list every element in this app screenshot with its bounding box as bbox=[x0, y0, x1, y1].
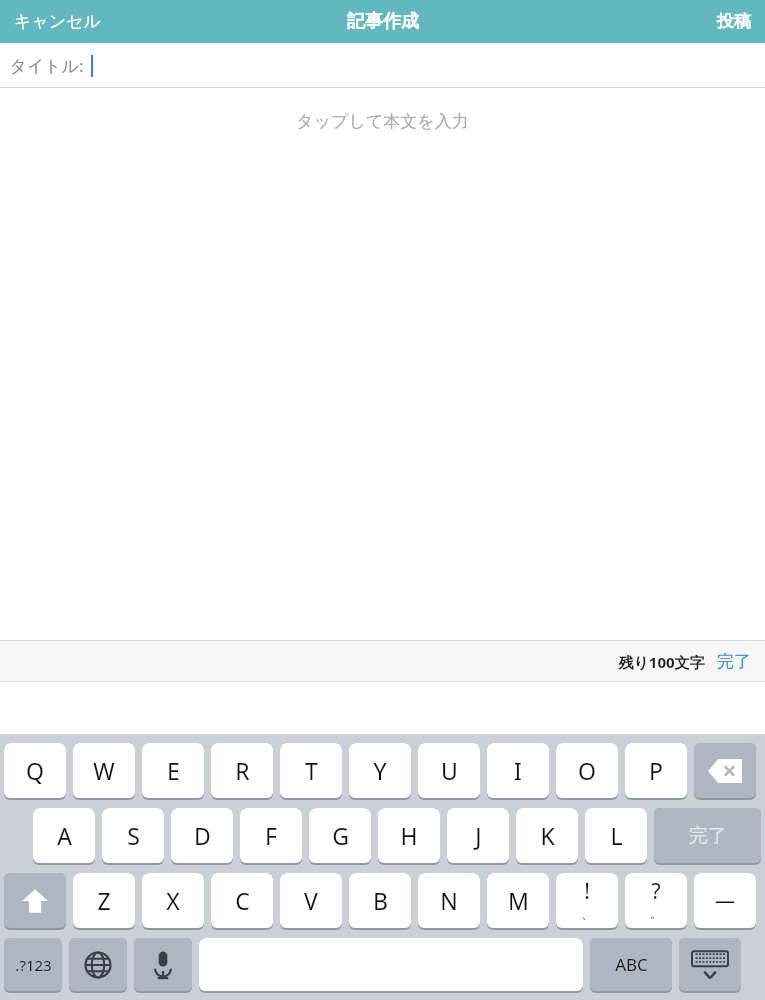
button[interactable]: U bbox=[418, 743, 480, 800]
button[interactable]: P bbox=[625, 743, 687, 800]
staticText: V bbox=[304, 885, 318, 916]
button[interactable]: K bbox=[516, 808, 578, 865]
staticText: タイトル: bbox=[9, 54, 84, 77]
staticText: G bbox=[332, 820, 349, 851]
button[interactable]: H bbox=[378, 808, 440, 865]
button[interactable]: Hide keyboard bbox=[679, 938, 741, 993]
button[interactable]: J bbox=[447, 808, 509, 865]
button[interactable]: タイトル: bbox=[0, 43, 765, 87]
button[interactable]: Y bbox=[349, 743, 411, 800]
staticText: ! bbox=[584, 877, 590, 906]
button[interactable]: I bbox=[487, 743, 549, 800]
button[interactable]: M bbox=[487, 873, 549, 930]
button[interactable]: Shift bbox=[4, 873, 66, 930]
staticText: F bbox=[265, 820, 277, 851]
staticText: M bbox=[508, 885, 529, 916]
button[interactable]: Q bbox=[4, 743, 66, 800]
button[interactable]: — bbox=[694, 873, 756, 930]
staticText: 、 bbox=[581, 905, 594, 921]
staticText: Y bbox=[373, 755, 387, 786]
button[interactable]: A bbox=[33, 808, 95, 865]
staticText: ? bbox=[651, 877, 661, 906]
button[interactable]: ? bbox=[625, 873, 687, 930]
staticText: E bbox=[167, 755, 180, 786]
staticText: ABC bbox=[615, 953, 648, 976]
button[interactable]: Voice input bbox=[134, 938, 192, 993]
staticText: キャンセル bbox=[14, 11, 101, 32]
staticText: .?123 bbox=[15, 955, 52, 975]
staticText: T bbox=[305, 755, 318, 786]
staticText: 記事作成 bbox=[347, 10, 419, 33]
staticText: A bbox=[57, 820, 72, 851]
staticText: Z bbox=[97, 885, 111, 916]
button[interactable]: Space bbox=[199, 938, 583, 993]
staticText: B bbox=[373, 885, 388, 916]
button[interactable]: V bbox=[280, 873, 342, 930]
button[interactable]: E bbox=[142, 743, 204, 800]
button[interactable]: ABC bbox=[590, 938, 672, 993]
button[interactable]: キャンセル bbox=[8, 5, 107, 38]
staticText: H bbox=[400, 820, 418, 851]
staticText: 残り100文字 bbox=[618, 652, 705, 672]
staticText: J bbox=[475, 820, 482, 851]
staticText: R bbox=[235, 755, 250, 786]
staticText: U bbox=[441, 755, 458, 786]
button[interactable]: B bbox=[349, 873, 411, 930]
button[interactable]: F bbox=[240, 808, 302, 865]
staticText: W bbox=[93, 755, 115, 786]
staticText: P bbox=[649, 755, 663, 786]
button[interactable]: ! bbox=[556, 873, 618, 930]
staticText: D bbox=[194, 820, 211, 851]
button[interactable]: S bbox=[102, 808, 164, 865]
staticText: 完了 bbox=[689, 824, 727, 848]
staticText: — bbox=[715, 887, 735, 914]
button[interactable]: Change keyboard language bbox=[69, 938, 127, 993]
button[interactable]: G bbox=[309, 808, 371, 865]
button[interactable]: N bbox=[418, 873, 480, 930]
button[interactable]: R bbox=[211, 743, 273, 800]
button[interactable]: 投稿 bbox=[711, 5, 757, 38]
button[interactable]: C bbox=[211, 873, 273, 930]
button[interactable]: O bbox=[556, 743, 618, 800]
button[interactable]: Backspace bbox=[694, 743, 756, 800]
button[interactable]: D bbox=[171, 808, 233, 865]
staticText: 。 bbox=[650, 905, 663, 921]
staticText: N bbox=[440, 885, 458, 916]
button[interactable]: .?123 bbox=[4, 938, 62, 993]
button[interactable]: 完了 bbox=[654, 808, 761, 865]
button[interactable]: 完了 bbox=[715, 647, 753, 676]
staticText: L bbox=[610, 820, 623, 851]
staticText: X bbox=[166, 885, 180, 916]
staticText: Q bbox=[26, 755, 44, 786]
staticText: タップして本文を入力 bbox=[296, 111, 469, 132]
staticText: 投稿 bbox=[717, 11, 751, 32]
button[interactable]: T bbox=[280, 743, 342, 800]
staticText: I bbox=[514, 755, 522, 786]
button[interactable]: W bbox=[73, 743, 135, 800]
staticText: K bbox=[540, 820, 555, 851]
button[interactable]: L bbox=[585, 808, 647, 865]
staticText: O bbox=[578, 755, 596, 786]
staticText: 完了 bbox=[717, 651, 751, 672]
button[interactable]: X bbox=[142, 873, 204, 930]
staticText: S bbox=[127, 820, 140, 851]
button[interactable]: Z bbox=[73, 873, 135, 930]
staticText: C bbox=[235, 885, 250, 916]
